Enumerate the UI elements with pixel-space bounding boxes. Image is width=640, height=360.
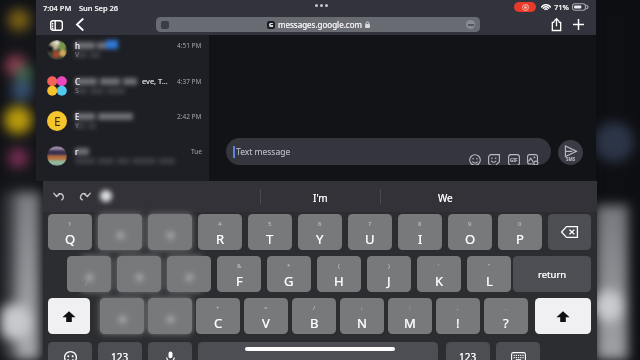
button[interactable]: h — [36, 35, 209, 71]
button[interactable]: 0 — [498, 214, 542, 250]
button[interactable]: 4 — [198, 214, 242, 250]
button[interactable]: G — [156, 17, 480, 32]
button[interactable]: E — [36, 106, 209, 142]
button[interactable]: Emoji — [469, 154, 481, 165]
button[interactable]: 2 — [98, 214, 142, 250]
button[interactable]: ' — [417, 256, 461, 292]
staticText: ) — [388, 262, 390, 270]
button[interactable]: : — [388, 298, 432, 334]
staticText: 123 — [111, 350, 129, 360]
button[interactable]: Share — [548, 16, 565, 33]
button[interactable]: 7 — [348, 214, 392, 250]
button[interactable]: ) — [367, 256, 411, 292]
button[interactable]: Send SMS — [558, 140, 583, 165]
staticText: N — [357, 314, 367, 332]
button[interactable]: * — [267, 256, 311, 292]
button[interactable]: Shift — [535, 298, 591, 334]
staticText: A — [85, 272, 94, 290]
button[interactable]: Hide keyboard — [496, 342, 540, 360]
staticText: * — [287, 262, 291, 270]
staticText: K — [435, 272, 444, 290]
button[interactable]: 1 — [48, 214, 92, 250]
staticText: We — [438, 191, 453, 205]
button[interactable]: Gallery — [527, 154, 539, 165]
staticText: Y — [75, 121, 79, 131]
staticText: I'm — [313, 191, 328, 205]
staticText: messages.google.com — [278, 19, 362, 30]
staticText: h — [75, 40, 80, 51]
staticText: B — [310, 314, 319, 332]
button[interactable]: 6 — [298, 214, 342, 250]
button[interactable]: $ — [167, 256, 211, 292]
staticText: eve, T… — [142, 76, 168, 86]
staticText: return — [538, 268, 567, 281]
button[interactable]: Stop recording — [514, 2, 536, 12]
staticText: 7 — [368, 220, 372, 228]
staticText: L — [486, 272, 493, 290]
staticText: 9 — [468, 220, 472, 228]
staticText: & — [237, 262, 242, 270]
button[interactable]: GIF — [508, 154, 520, 165]
staticText: R — [216, 230, 225, 248]
staticText: ( — [338, 262, 340, 270]
button[interactable]: Redo — [78, 190, 90, 202]
staticText: + — [216, 304, 220, 312]
button[interactable]: Text message — [226, 138, 551, 165]
button[interactable]: 3 — [148, 214, 192, 250]
button[interactable]: # — [117, 256, 161, 292]
staticText: ! — [456, 314, 460, 332]
staticText: F — [236, 272, 243, 290]
button[interactable]: Undo — [54, 190, 66, 202]
staticText: " — [488, 262, 491, 270]
staticText: I — [418, 230, 423, 248]
staticText: G — [269, 21, 274, 29]
button[interactable]: % — [100, 298, 144, 334]
staticText: M — [404, 314, 416, 332]
staticText: E — [75, 111, 80, 122]
button[interactable]: Shift — [48, 298, 90, 334]
button[interactable]: & — [217, 256, 261, 292]
staticText: P — [516, 230, 524, 248]
staticText: Text message — [236, 146, 291, 158]
staticText: ; — [361, 304, 363, 312]
button[interactable]: C — [36, 71, 209, 107]
staticText: J — [387, 272, 391, 290]
staticText: 7:04 PM — [43, 3, 72, 13]
button[interactable]: . — [484, 298, 528, 334]
staticText: = — [264, 304, 268, 312]
button[interactable]: Space — [198, 342, 438, 360]
button[interactable]: 5 — [248, 214, 292, 250]
button[interactable]: Return — [513, 256, 591, 292]
staticText: Y — [316, 230, 324, 248]
button[interactable]: Numbers — [98, 342, 142, 360]
button[interactable]: / — [292, 298, 336, 334]
button[interactable]: New tab — [570, 16, 587, 33]
button[interactable]: 9 — [448, 214, 492, 250]
button[interactable]: + — [196, 298, 240, 334]
button[interactable]: Back — [71, 16, 88, 33]
staticText: S — [135, 272, 143, 290]
staticText: T — [266, 230, 274, 248]
button[interactable]: @ — [67, 256, 111, 292]
button[interactable]: , — [436, 298, 480, 334]
staticText: / — [313, 304, 316, 312]
button[interactable]: Show sidebar — [47, 16, 66, 35]
button[interactable]: 8 — [398, 214, 442, 250]
button[interactable]: Page settings — [466, 20, 475, 29]
button[interactable]: r — [36, 141, 209, 177]
button[interactable]: Numbers — [446, 342, 490, 360]
button[interactable]: Stickers — [488, 154, 500, 165]
button[interactable]: - — [148, 298, 192, 334]
button[interactable]: Backspace — [548, 214, 591, 250]
button[interactable]: Dictation — [148, 342, 192, 360]
button[interactable]: Emoji — [48, 342, 92, 360]
staticText: SMS — [566, 156, 576, 162]
staticText: Z — [118, 314, 126, 332]
button[interactable]: ; — [340, 298, 384, 334]
button[interactable]: " — [467, 256, 511, 292]
button[interactable]: ( — [317, 256, 361, 292]
staticText: ? — [503, 314, 509, 332]
button[interactable]: = — [244, 298, 288, 334]
